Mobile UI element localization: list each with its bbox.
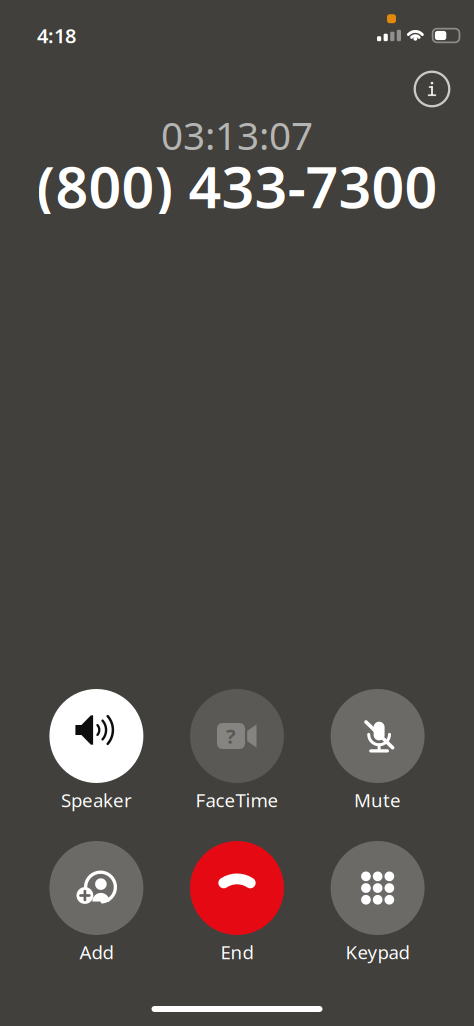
button[interactable]: Speaker <box>49 689 143 809</box>
button[interactable]: Keypad <box>331 841 425 961</box>
staticText: ? <box>226 723 236 749</box>
staticText: 03:13:07 <box>161 109 313 161</box>
button[interactable]: Add <box>49 841 143 961</box>
staticText: 4:18 <box>37 22 76 49</box>
staticText: Mute <box>354 788 401 812</box>
button[interactable]: Mute <box>331 689 425 809</box>
button[interactable]: ? <box>190 689 284 809</box>
staticText: (800) 433-7300 <box>36 148 437 224</box>
staticText: Speaker <box>61 788 132 812</box>
button[interactable]: Call info <box>409 66 455 112</box>
staticText: Add <box>79 940 113 964</box>
staticText: End <box>220 940 253 964</box>
staticText: FaceTime <box>195 788 278 812</box>
button[interactable]: End <box>190 841 284 961</box>
staticText: Keypad <box>346 940 410 964</box>
